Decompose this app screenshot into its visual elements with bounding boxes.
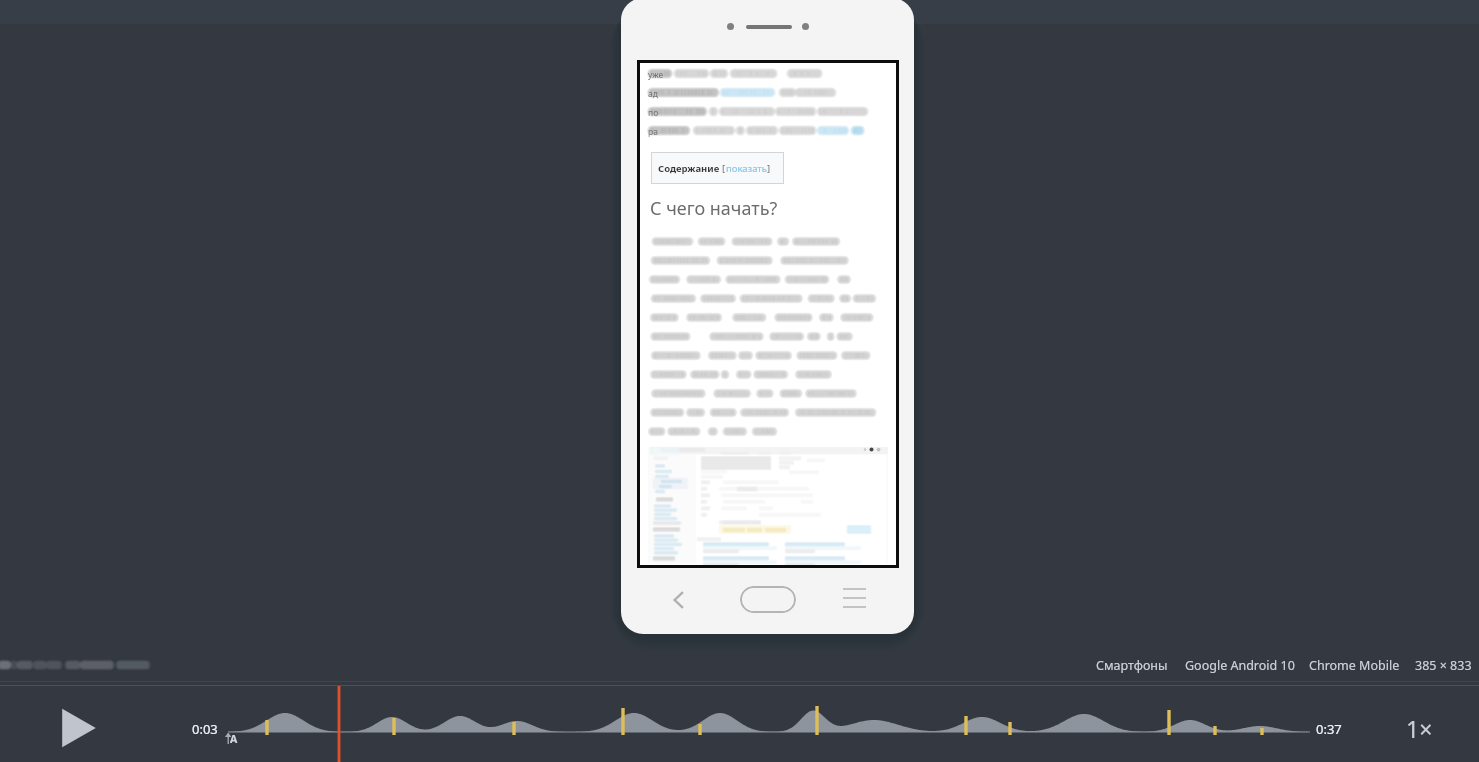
staticText: С чего начать?	[650, 196, 778, 221]
staticText: ]	[767, 162, 771, 175]
staticText: ад	[648, 88, 658, 100]
staticText: показать	[726, 162, 767, 175]
button[interactable]: Recorded screen preview	[637, 60, 899, 568]
staticText: Google Android 10	[1185, 657, 1295, 674]
staticText: 385 × 833	[1415, 657, 1472, 674]
staticText: 1×	[1406, 713, 1433, 744]
staticText: A	[230, 732, 238, 746]
staticText: уже	[648, 69, 664, 81]
staticText: Смартфоны	[1096, 657, 1168, 674]
button[interactable]: Содержание	[651, 152, 784, 184]
button[interactable]: Play	[59, 706, 99, 750]
button[interactable]: Home	[740, 586, 796, 613]
staticText: 0:37	[1316, 720, 1342, 738]
staticText: Chrome Mobile	[1309, 657, 1400, 674]
button[interactable]: Back	[668, 589, 690, 611]
button[interactable]: Recent apps	[843, 588, 866, 608]
staticText: 0:03	[192, 720, 218, 738]
staticText: [	[722, 162, 726, 175]
staticText: по	[648, 107, 659, 119]
staticText: Содержание	[658, 162, 720, 175]
staticText: ра	[648, 126, 658, 138]
button[interactable]: 1×	[1398, 706, 1450, 750]
button[interactable]: Seek in recording	[0, 686, 1479, 762]
